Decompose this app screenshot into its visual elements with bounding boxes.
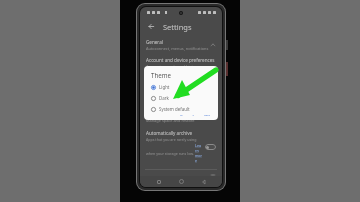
button[interactable]: General <box>140 38 222 52</box>
staticText: General <box>146 39 163 45</box>
staticText: OK <box>204 113 211 116</box>
staticText: Light, dark, system <box>146 82 181 87</box>
staticText: System default <box>159 106 190 112</box>
button[interactable]: Cancel <box>178 112 196 117</box>
staticText: Light <box>159 84 170 90</box>
button[interactable]: Automatically archive apps toggle <box>205 144 216 150</box>
button[interactable]: Account and device preferences <box>140 56 222 70</box>
staticText: when your storage runs low. <box>146 151 195 156</box>
staticText: Apps that you are rarely using are remov… <box>146 137 202 142</box>
staticText: Sound and vibration <box>146 93 190 99</box>
staticText: Autoconnect, menus, notifications <box>146 46 209 51</box>
button[interactable]: Back <box>146 21 157 32</box>
button[interactable]: Recents <box>154 177 163 186</box>
button[interactable]: Dark <box>151 95 213 101</box>
staticText: Cancel <box>180 113 194 116</box>
staticText: Storage and backups <box>146 111 192 117</box>
staticText: Account, security and history <box>146 64 199 69</box>
staticText: Display and theme <box>146 75 187 81</box>
staticText: Dark <box>159 95 169 101</box>
other: Pointer arrow <box>164 64 222 108</box>
staticText: Learn more <box>195 143 202 163</box>
button[interactable]: Network preferences <box>140 174 222 176</box>
button[interactable]: Storage and backups <box>140 110 222 124</box>
staticText: Theme <box>151 71 172 79</box>
staticText: Ringtone, volume, haptics <box>146 100 194 105</box>
button[interactable]: Home <box>177 177 186 186</box>
staticText: Automatically archive apps <box>146 130 202 136</box>
button[interactable]: System default <box>151 106 213 112</box>
button[interactable]: OK <box>202 112 213 117</box>
staticText: Account and device preferences <box>146 57 215 63</box>
button[interactable]: Automatically archive apps <box>140 130 222 163</box>
button[interactable]: Display and theme <box>140 74 222 88</box>
button[interactable]: Light <box>151 84 213 90</box>
button[interactable]: Sound and vibration <box>140 92 222 106</box>
staticText: Manage space and restore <box>146 118 195 123</box>
staticText: Settings <box>163 22 192 32</box>
button[interactable]: Back <box>199 177 208 186</box>
